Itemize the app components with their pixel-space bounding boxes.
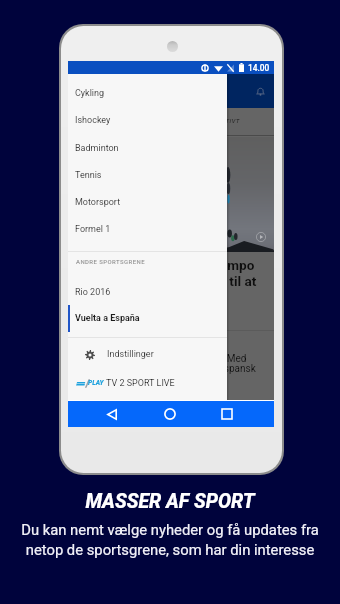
staticText: Cykling [75,88,105,99]
button[interactable]: Rio 2016 [68,279,227,306]
button[interactable]: Badminton [68,135,227,162]
staticText: ANDRE SPORTSGRENE [76,258,145,265]
button[interactable]: PLAY [68,370,227,397]
staticText: TV 2 SPORT LIVE [106,378,175,389]
button[interactable]: Ishockey [68,107,227,134]
button[interactable]: Formel 1 [68,216,227,243]
button[interactable]: Motorsport [68,189,227,216]
button[interactable]: Notifications [252,83,268,99]
staticText: Tennis [75,170,102,181]
staticText: Hollænderen vandt 13. etape. Med [94,353,247,365]
staticText: PLAY [88,379,104,387]
button[interactable]: Back [99,401,125,427]
staticText: MASSER AF SPORT [85,490,255,513]
staticText: Ishockey [75,115,111,126]
button[interactable]: Home [157,401,183,427]
button[interactable]: Indstillinger [68,341,227,368]
button[interactable]: Tennis [68,162,227,189]
staticText: Holdt højt tempo [152,257,255,273]
staticText: Rio 2016 [75,287,111,298]
button[interactable]: Recent apps [214,401,240,427]
staticText: Indstillinger [107,349,154,360]
staticText: Du kan nemt vælge nyheder og få updates … [21,521,319,559]
staticText: hele vejen til at [164,273,257,289]
staticText: Badminton [75,143,119,154]
staticText: Formel 1 [75,224,111,235]
staticText: Motorsport [75,197,121,208]
button[interactable]: Vuelta a España [68,305,227,332]
staticText: Vuelta a España [75,313,140,324]
staticText: kun 45 kilometer igen tog den spansk [90,363,256,375]
staticText: 14.00 [248,63,270,73]
staticText: AKTIVT [217,117,240,124]
button[interactable]: Cykling [68,80,227,107]
